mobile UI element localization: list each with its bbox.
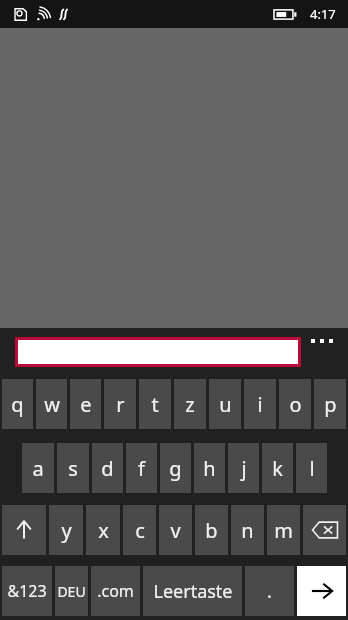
- staticText: g: [169, 455, 182, 482]
- button[interactable]: c: [123, 505, 156, 555]
- staticText: r: [116, 391, 125, 418]
- staticText: a: [32, 455, 44, 482]
- button[interactable]: g: [160, 443, 191, 493]
- button[interactable]: y: [49, 505, 83, 555]
- button[interactable]: w: [36, 379, 67, 429]
- button[interactable]: q: [2, 379, 33, 429]
- staticText: c: [135, 517, 145, 544]
- button[interactable]: a: [22, 443, 54, 493]
- button[interactable]: x: [86, 505, 120, 555]
- button[interactable]: z: [174, 379, 206, 429]
- staticText: i: [257, 391, 263, 418]
- button[interactable]: u: [209, 379, 241, 429]
- staticText: DEU: [57, 582, 86, 601]
- staticText: p: [324, 391, 337, 418]
- button[interactable]: r: [104, 379, 136, 429]
- button[interactable]: Backspace: [303, 505, 346, 555]
- staticText: q: [11, 391, 24, 418]
- button[interactable]: More options: [305, 339, 339, 361]
- button[interactable]: Enter: [297, 566, 346, 616]
- staticText: 4:17: [310, 5, 336, 23]
- button[interactable]: k: [262, 443, 293, 493]
- button[interactable]: n: [231, 505, 264, 555]
- button[interactable]: m: [267, 505, 300, 555]
- staticText: Leertaste: [153, 579, 233, 604]
- button[interactable]: Leertaste: [143, 566, 242, 616]
- staticText: l: [309, 455, 315, 482]
- button[interactable]: l: [296, 443, 327, 493]
- button[interactable]: j: [228, 443, 259, 493]
- button[interactable]: f: [126, 443, 157, 493]
- staticText: s: [68, 455, 78, 482]
- staticText: m: [274, 517, 293, 544]
- staticText: f: [138, 455, 145, 482]
- staticText: w: [44, 391, 60, 418]
- staticText: n: [241, 517, 254, 544]
- button[interactable]: p: [314, 379, 346, 429]
- staticText: h: [203, 455, 216, 482]
- button[interactable]: .com: [91, 566, 140, 616]
- button[interactable]: s: [57, 443, 89, 493]
- button[interactable]: i: [244, 379, 276, 429]
- staticText: j: [241, 455, 247, 482]
- button[interactable]: &123: [2, 566, 52, 616]
- button[interactable]: DEU: [55, 566, 88, 616]
- staticText: e: [80, 391, 92, 418]
- staticText: .: [267, 579, 272, 604]
- staticText: k: [272, 455, 283, 482]
- staticText: t: [151, 391, 159, 418]
- staticText: &123: [7, 580, 47, 602]
- button[interactable]: o: [279, 379, 311, 429]
- button[interactable]: v: [159, 505, 192, 555]
- button[interactable]: e: [70, 379, 101, 429]
- staticText: d: [101, 455, 114, 482]
- staticText: y: [61, 517, 72, 544]
- button[interactable]: b: [195, 505, 228, 555]
- staticText: x: [98, 517, 109, 544]
- staticText: v: [170, 517, 181, 544]
- button[interactable]: t: [139, 379, 171, 429]
- staticText: .com: [97, 580, 134, 602]
- staticText: u: [219, 391, 232, 418]
- button[interactable]: .: [245, 566, 294, 616]
- staticText: b: [205, 517, 218, 544]
- staticText: o: [289, 391, 302, 418]
- button[interactable]: h: [194, 443, 225, 493]
- button[interactable]: d: [92, 443, 123, 493]
- button[interactable]: Shift: [2, 505, 46, 555]
- staticText: z: [185, 391, 195, 418]
